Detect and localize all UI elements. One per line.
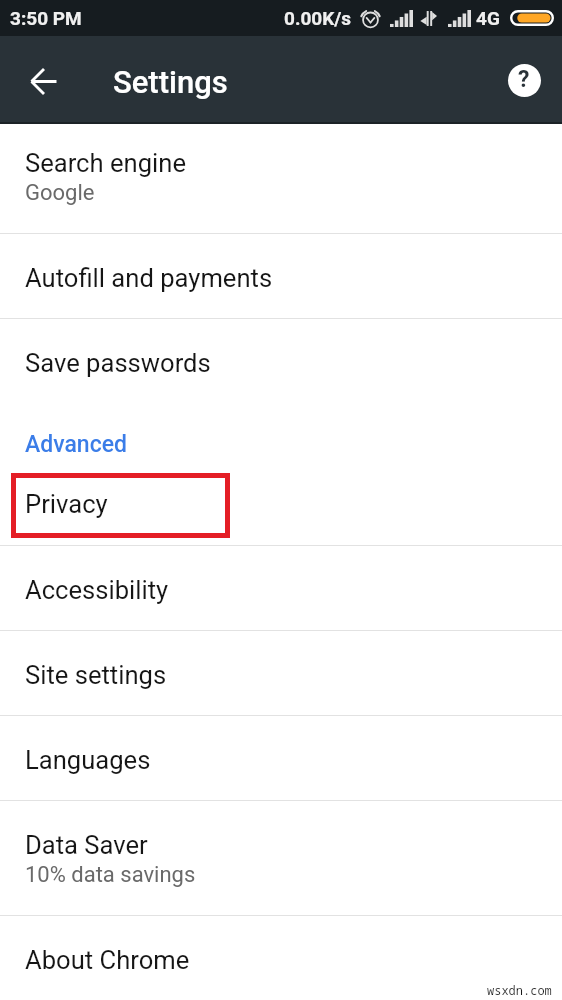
staticText: Advanced (25, 431, 127, 458)
button[interactable]: Help (500, 56, 548, 104)
staticText: Settings (113, 64, 228, 100)
button[interactable]: Search engine (0, 124, 562, 233)
staticText: ? (518, 66, 530, 93)
staticText: Search engine (25, 148, 186, 178)
button[interactable]: About Chrome (0, 916, 562, 1000)
staticText: Languages (25, 745, 151, 775)
button[interactable]: Back (20, 56, 68, 104)
staticText: About Chrome (25, 945, 190, 975)
button[interactable]: Data Saver (0, 801, 562, 915)
staticText: 0.00K/s (284, 7, 352, 29)
staticText: Site settings (25, 660, 167, 690)
button[interactable]: Autofill and payments (0, 234, 562, 318)
button[interactable]: Languages (0, 716, 562, 800)
staticText: Accessibility (25, 575, 169, 605)
staticText: 10% data savings (25, 862, 196, 888)
staticText: Google (25, 180, 95, 206)
staticText: 3:50 PM (10, 7, 82, 29)
staticText: Autofill and payments (25, 263, 273, 293)
staticText: Save passwords (25, 348, 211, 378)
button[interactable]: Accessibility (0, 546, 562, 630)
button[interactable]: Save passwords (0, 319, 562, 403)
button[interactable]: Site settings (0, 631, 562, 715)
staticText: Data Saver (25, 830, 148, 860)
staticText: wsxdn.com (487, 982, 552, 998)
button[interactable]: Privacy (0, 461, 562, 545)
staticText: 4G (476, 7, 500, 29)
staticText: Privacy (25, 489, 108, 519)
